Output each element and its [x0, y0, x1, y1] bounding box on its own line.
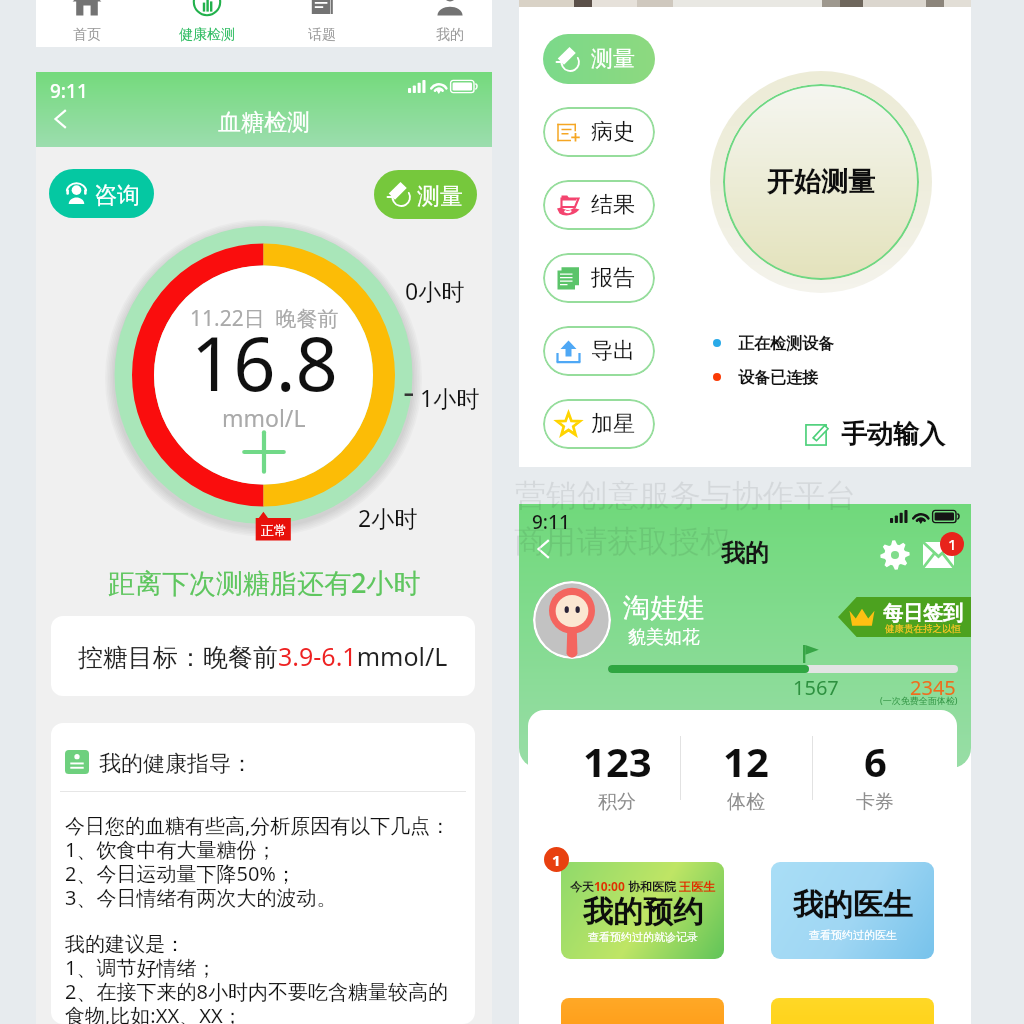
staticText: 123	[583, 734, 652, 788]
staticText: 我的医生	[793, 886, 913, 924]
staticText: 结果	[591, 191, 635, 219]
button[interactable]: 话题	[274, 0, 370, 47]
button[interactable]	[561, 998, 724, 1024]
staticText: 话题	[308, 26, 336, 44]
staticText: 2小时	[358, 502, 418, 533]
staticText: 卡券	[856, 790, 894, 814]
staticText: (一次免费全面体检)	[880, 694, 958, 706]
button[interactable]	[771, 998, 934, 1024]
staticText: 营销创意服务与协作平台	[515, 476, 856, 515]
button[interactable]: 手动输入	[841, 418, 945, 451]
staticText: 11.22日 晚餐前	[190, 304, 339, 333]
staticText: 咨询	[94, 181, 140, 210]
button[interactable]: Messages	[923, 542, 954, 568]
staticText: 体检	[727, 790, 765, 814]
staticText: 貌美如花	[628, 626, 700, 649]
button[interactable]: Manual input	[805, 422, 829, 446]
button[interactable]: 测量	[374, 170, 477, 219]
button[interactable]: 导出	[543, 326, 655, 376]
staticText: 查看预约过的医生	[809, 928, 897, 942]
button[interactable]: 123	[562, 710, 672, 824]
staticText: 每日签到	[883, 601, 963, 626]
staticText: 健康检测	[179, 26, 235, 44]
button[interactable]: Back	[533, 538, 555, 560]
button[interactable]: 6	[820, 710, 930, 824]
staticText: 1567	[793, 674, 839, 701]
button[interactable]: 结果	[543, 180, 655, 230]
button[interactable]: 首页	[39, 0, 135, 47]
staticText: 我的预约	[583, 893, 703, 931]
staticText: 测量	[591, 45, 635, 73]
button[interactable]: 健康检测	[159, 0, 255, 47]
button[interactable]: 每日签到	[838, 597, 971, 637]
staticText: 1	[948, 534, 957, 554]
staticText: 1小时	[420, 382, 480, 413]
staticText: 1	[552, 850, 561, 870]
staticText: 正常	[261, 522, 287, 538]
staticText: 今日您的血糖有些高,分析原因有以下几点： 1、饮食中有大量糖份； 2、今日运动量…	[65, 812, 451, 1024]
button[interactable]: 开始测量	[710, 71, 932, 293]
button[interactable]: 病史	[543, 107, 655, 157]
staticText: 病史	[591, 118, 635, 146]
staticText: 9:11	[50, 78, 88, 104]
staticText: 商用请获取授权	[514, 522, 731, 561]
button[interactable]: 报告	[543, 253, 655, 303]
button[interactable]: 控糖目标：晚餐前3.9-6.1mmol/L	[51, 616, 475, 696]
button[interactable]: 今天10:00 协和医院 王医生	[561, 862, 724, 959]
staticText: 加星	[591, 410, 635, 438]
staticText: 6	[864, 734, 887, 788]
staticText: 设备已连接	[738, 368, 818, 388]
staticText: 16.8	[191, 312, 338, 413]
staticText: 查看预约过的就诊记录	[588, 930, 698, 944]
staticText: 报告	[591, 264, 635, 292]
button[interactable]	[533, 581, 611, 659]
staticText: 正在检测设备	[738, 334, 834, 354]
staticText: 今天10:00 协和医院 王医生	[570, 878, 716, 894]
button[interactable]: 加星	[543, 399, 655, 449]
staticText: 控糖目标：晚餐前3.9-6.1mmol/L	[78, 639, 448, 673]
button[interactable]: 我的	[402, 0, 498, 47]
staticText: 2345	[910, 674, 956, 701]
staticText: 健康贵在持之以恒	[885, 623, 961, 635]
staticText: 首页	[73, 26, 101, 44]
staticText: 我的	[436, 26, 464, 44]
button[interactable]: 咨询	[49, 169, 154, 218]
staticText: mmol/L	[222, 402, 306, 433]
staticText: 淘娃娃	[623, 591, 704, 625]
staticText: 0小时	[405, 275, 465, 306]
staticText: 导出	[591, 337, 635, 365]
staticText: 我的	[721, 538, 769, 568]
staticText: 距离下次测糖脂还有2小时	[108, 564, 421, 601]
button[interactable]: Settings	[880, 540, 910, 570]
button[interactable]: 测量	[543, 34, 655, 84]
staticText: 9:11	[532, 509, 570, 535]
staticText: 血糖检测	[218, 108, 310, 137]
staticText: 开始测量	[767, 165, 875, 199]
staticText: 我的健康指导：	[99, 750, 253, 778]
staticText: 测量	[417, 182, 463, 211]
button[interactable]: 12	[691, 710, 801, 824]
staticText: 积分	[598, 790, 636, 814]
button[interactable]: Back	[50, 108, 72, 130]
button[interactable]: 我的医生	[771, 862, 934, 959]
staticText: 12	[723, 734, 769, 788]
